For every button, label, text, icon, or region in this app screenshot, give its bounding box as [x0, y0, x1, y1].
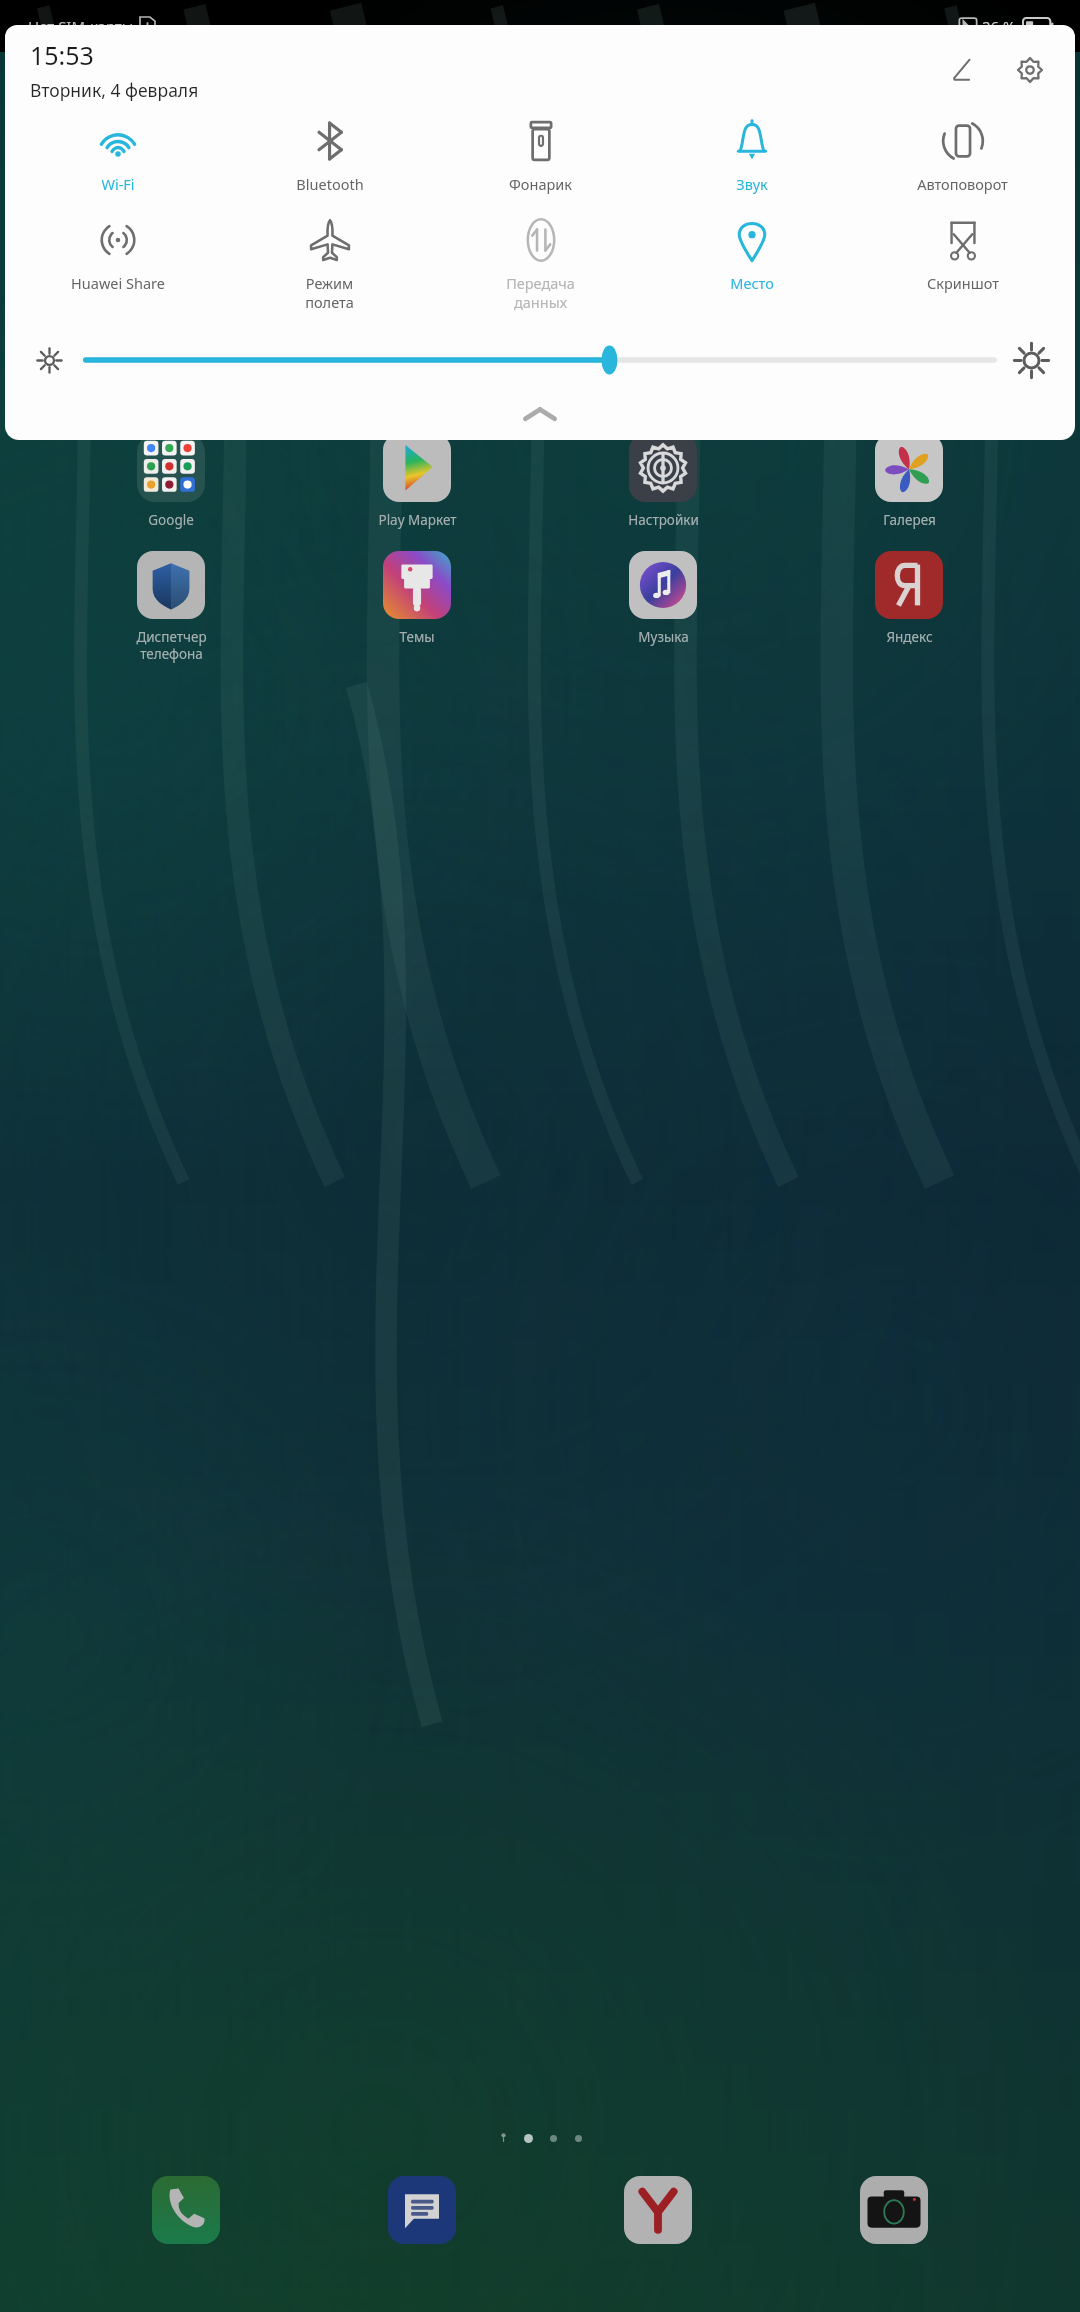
staticText: Google [148, 511, 194, 529]
staticText: Место [730, 273, 774, 293]
button[interactable]: Edit quick settings [936, 45, 986, 95]
staticText: Huawei Share [71, 273, 165, 293]
button[interactable]: Camera [844, 2160, 944, 2260]
staticText: Поиск в Google [36, 358, 163, 381]
staticText: Вторник, 4 февраля [30, 78, 199, 102]
button[interactable]: Настройки [588, 434, 738, 529]
button[interactable]: Decrease brightness [23, 334, 75, 386]
button[interactable]: Диспетчер телефона [96, 551, 246, 663]
button[interactable]: Google [96, 434, 246, 529]
staticText: Передача данных [506, 273, 575, 312]
button[interactable]: Collapse panel [5, 394, 1075, 434]
staticText: Скриншот [927, 273, 999, 293]
button[interactable]: Increase brightness [1005, 334, 1057, 386]
staticText: Настройки [628, 511, 699, 529]
button[interactable]: Звук [646, 119, 857, 194]
button[interactable]: Музыка [588, 551, 738, 646]
staticText: Звук [736, 174, 768, 194]
button[interactable]: Место [646, 218, 857, 293]
button[interactable]: Скриншот [857, 218, 1068, 293]
button[interactable]: Темы [342, 551, 492, 646]
staticText: Темы [399, 628, 435, 646]
staticText: Wi-Fi [101, 174, 135, 194]
staticText: 15:53 [30, 38, 94, 72]
button[interactable]: Галерея [834, 434, 984, 529]
staticText: Bluetooth [296, 174, 364, 194]
button[interactable]: Yandex Browser [608, 2160, 708, 2260]
button[interactable]: Bluetooth [224, 119, 435, 194]
button[interactable]: Wi-Fi [12, 119, 224, 194]
button[interactable]: Режим полета [224, 218, 435, 312]
staticText: Режим полета [305, 273, 354, 312]
button[interactable]: Поиск в Google [20, 346, 1060, 392]
button[interactable]: Яндекс [834, 551, 984, 646]
button[interactable]: Фонарик [435, 119, 646, 194]
staticText: Яндекс [886, 628, 933, 646]
staticText: Автоповорот [917, 174, 1008, 194]
button[interactable]: Huawei Share [12, 218, 224, 293]
button[interactable]: Messages [372, 2160, 472, 2260]
button[interactable]: Передача данных [435, 218, 646, 312]
staticText: Диспетчер телефона [136, 628, 207, 663]
button[interactable] [83, 340, 997, 380]
other: Voice search [1020, 357, 1044, 381]
button[interactable]: Phone [136, 2160, 236, 2260]
staticText: Музыка [638, 628, 689, 646]
button[interactable]: Settings [1005, 45, 1055, 95]
button[interactable]: Автоповорот [857, 119, 1068, 194]
staticText: Галерея [883, 511, 936, 529]
button[interactable]: Play Маркет [342, 434, 492, 529]
staticText: Play Маркет [378, 511, 457, 529]
staticText: 26 % [982, 16, 1016, 36]
staticText: Нет SIM-карты [28, 16, 134, 36]
staticText: Фонарик [509, 174, 572, 194]
